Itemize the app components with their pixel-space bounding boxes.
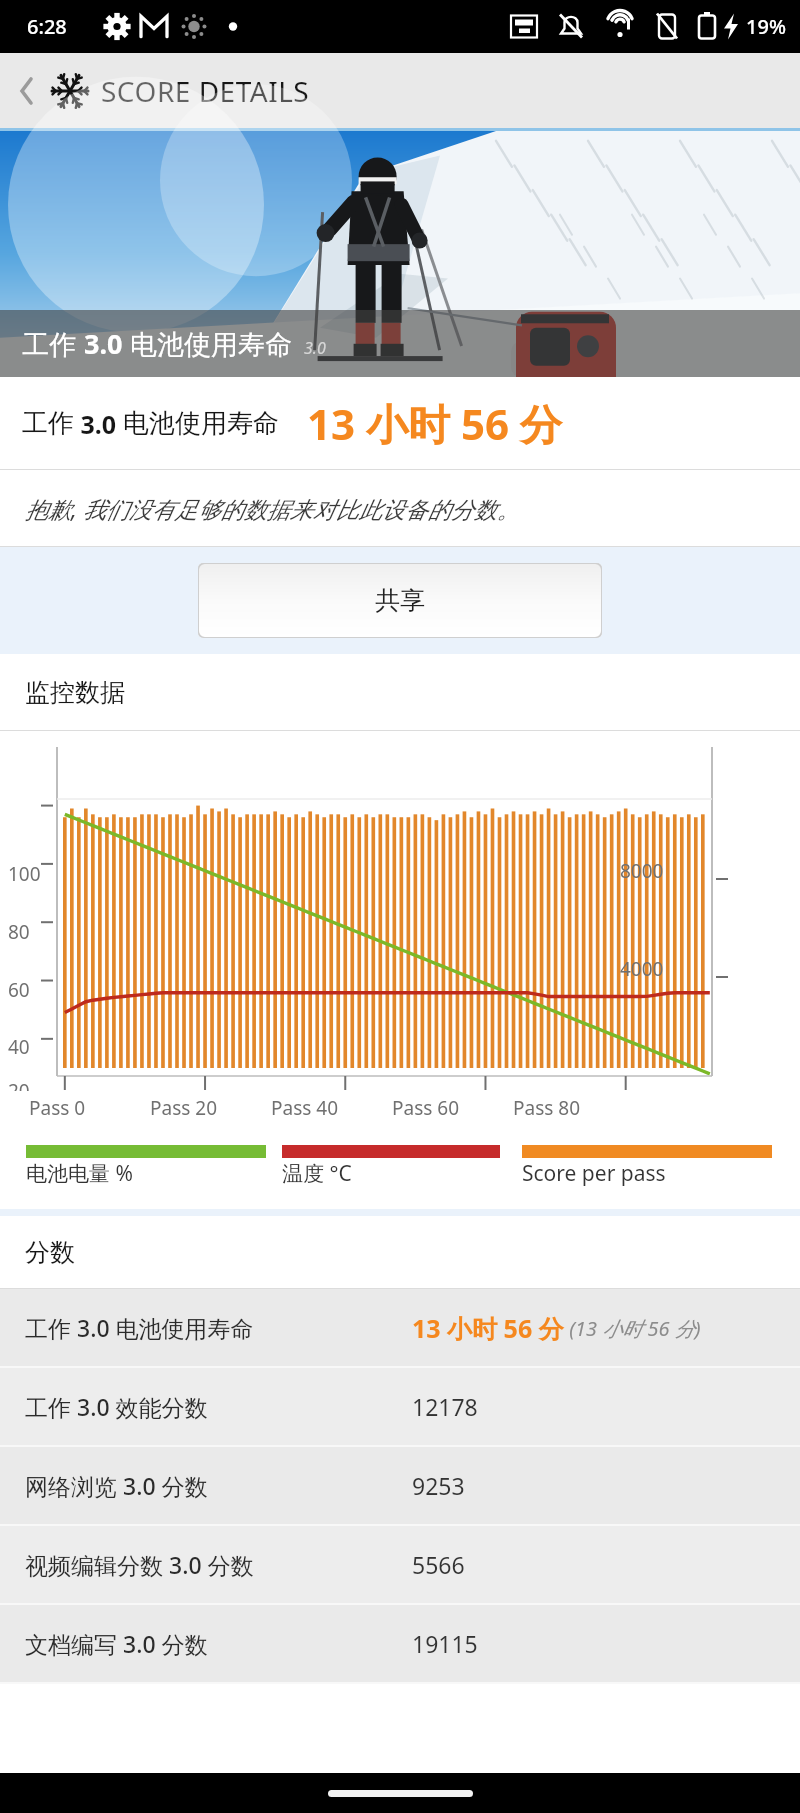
staticText: 电池使用寿命: [123, 407, 279, 440]
button[interactable]: Back: [4, 68, 50, 114]
staticText: 40: [8, 1034, 30, 1060]
staticText: 3.0: [74, 407, 123, 441]
staticText: 工作: [22, 407, 74, 440]
staticText: 60: [8, 977, 30, 1003]
button[interactable]: 工作 3.0 电池使用寿命: [0, 1289, 800, 1366]
staticText: 3.0: [304, 337, 326, 359]
staticText: SCORE DETAILS: [101, 72, 310, 110]
staticText: 13 小时 56 分: [412, 1311, 564, 1345]
staticText: 抱歉, 我们没有足够的数据来对比此设备的分数。: [25, 493, 520, 524]
staticText: 网络浏览 3.0 分数: [25, 1470, 208, 1501]
staticText: 分数: [25, 1237, 75, 1268]
staticText: 视频编辑分数 3.0 分数: [25, 1549, 254, 1580]
staticText: 3.0: [84, 325, 123, 362]
button[interactable]: 文档编写 3.0 分数: [0, 1605, 800, 1682]
staticText: 共享: [375, 585, 425, 616]
staticText: (13 小时 56 分): [564, 1315, 701, 1342]
staticText: 电池电量 %: [26, 1159, 133, 1188]
staticText: 8000: [620, 858, 664, 884]
staticText: 5566: [412, 1549, 465, 1580]
staticText: Pass 60: [392, 1095, 460, 1121]
staticText: Pass 80: [513, 1095, 581, 1121]
staticText: 温度 °C: [282, 1159, 352, 1188]
staticText: 工作 3.0 效能分数: [25, 1391, 208, 1422]
staticText: Pass 20: [150, 1095, 218, 1121]
staticText: 100: [8, 861, 41, 887]
staticText: 6:28: [27, 13, 67, 40]
staticText: 12178: [412, 1391, 478, 1422]
button[interactable]: 视频编辑分数 3.0 分数: [0, 1526, 800, 1603]
staticText: 电池使用寿命: [123, 325, 293, 362]
staticText: 4000: [620, 956, 664, 982]
staticText: 13 小时 56 分: [307, 395, 562, 452]
staticText: 19%: [746, 13, 786, 40]
button[interactable]: 共享: [198, 563, 602, 638]
button[interactable]: 网络浏览 3.0 分数: [0, 1447, 800, 1524]
staticText: 20: [8, 1078, 30, 1091]
staticText: 80: [8, 919, 30, 945]
staticText: 19115: [412, 1628, 478, 1659]
staticText: 文档编写 3.0 分数: [25, 1628, 208, 1659]
staticText: 工作 3.0 电池使用寿命: [25, 1312, 254, 1343]
staticText: 监控数据: [25, 677, 125, 708]
staticText: 9253: [412, 1470, 465, 1501]
button[interactable]: 工作 3.0 效能分数: [0, 1368, 800, 1445]
staticText: 工作: [22, 325, 84, 362]
staticText: Pass 40: [271, 1095, 339, 1121]
staticText: Score per pass: [522, 1159, 666, 1188]
staticText: Pass 0: [29, 1095, 86, 1121]
